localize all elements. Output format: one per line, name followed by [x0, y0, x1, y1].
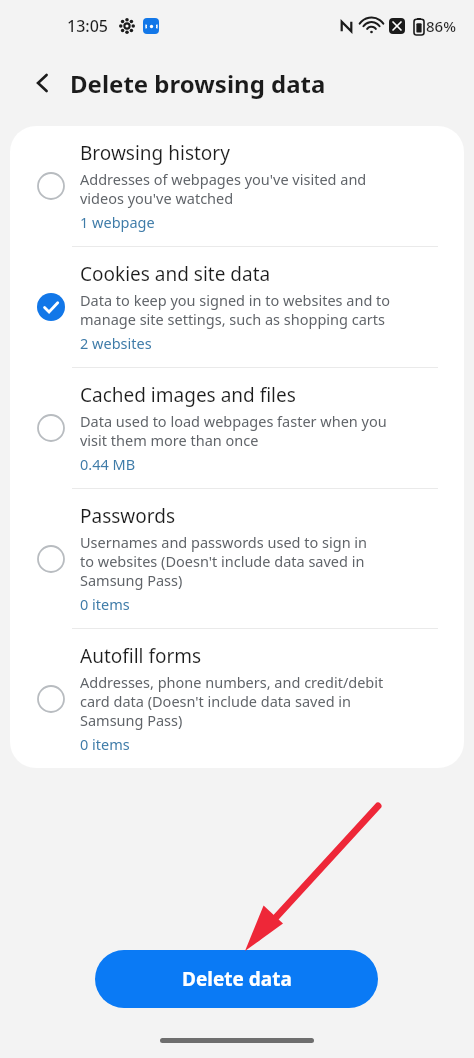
staticText: Cookies and site data [80, 261, 271, 287]
staticText: Browsing history [80, 140, 230, 166]
button[interactable]: Passwords [10, 489, 464, 628]
staticText: Data to keep you signed in to websites a… [80, 290, 391, 329]
staticText: 0 items [80, 734, 130, 754]
staticText: Autofill forms [80, 643, 202, 669]
staticText: 0.44 MB [80, 454, 136, 474]
staticText: Addresses, phone numbers, and credit/deb… [80, 672, 384, 730]
button[interactable]: Browsing history [10, 126, 464, 246]
staticText: 2 websites [80, 333, 152, 353]
staticText: 86% [426, 16, 456, 36]
staticText: 0 items [80, 594, 130, 614]
button[interactable]: Back [26, 66, 60, 100]
staticText: Passwords [80, 503, 176, 529]
staticText: Delete data [182, 966, 292, 992]
button[interactable]: Cookies and site data [10, 247, 464, 367]
button[interactable]: Cached images and files [10, 368, 464, 488]
button[interactable]: Autofill forms [10, 629, 464, 768]
staticText: 1 webpage [80, 212, 155, 232]
staticText: Cached images and files [80, 382, 296, 408]
button[interactable]: Delete data [95, 950, 378, 1008]
staticText: Addresses of webpages you've visited and… [80, 169, 367, 208]
staticText: 13:05 [67, 15, 108, 37]
staticText: Data used to load webpages faster when y… [80, 411, 387, 450]
staticText: Usernames and passwords used to sign in … [80, 532, 368, 590]
staticText: Delete browsing data [70, 67, 326, 100]
